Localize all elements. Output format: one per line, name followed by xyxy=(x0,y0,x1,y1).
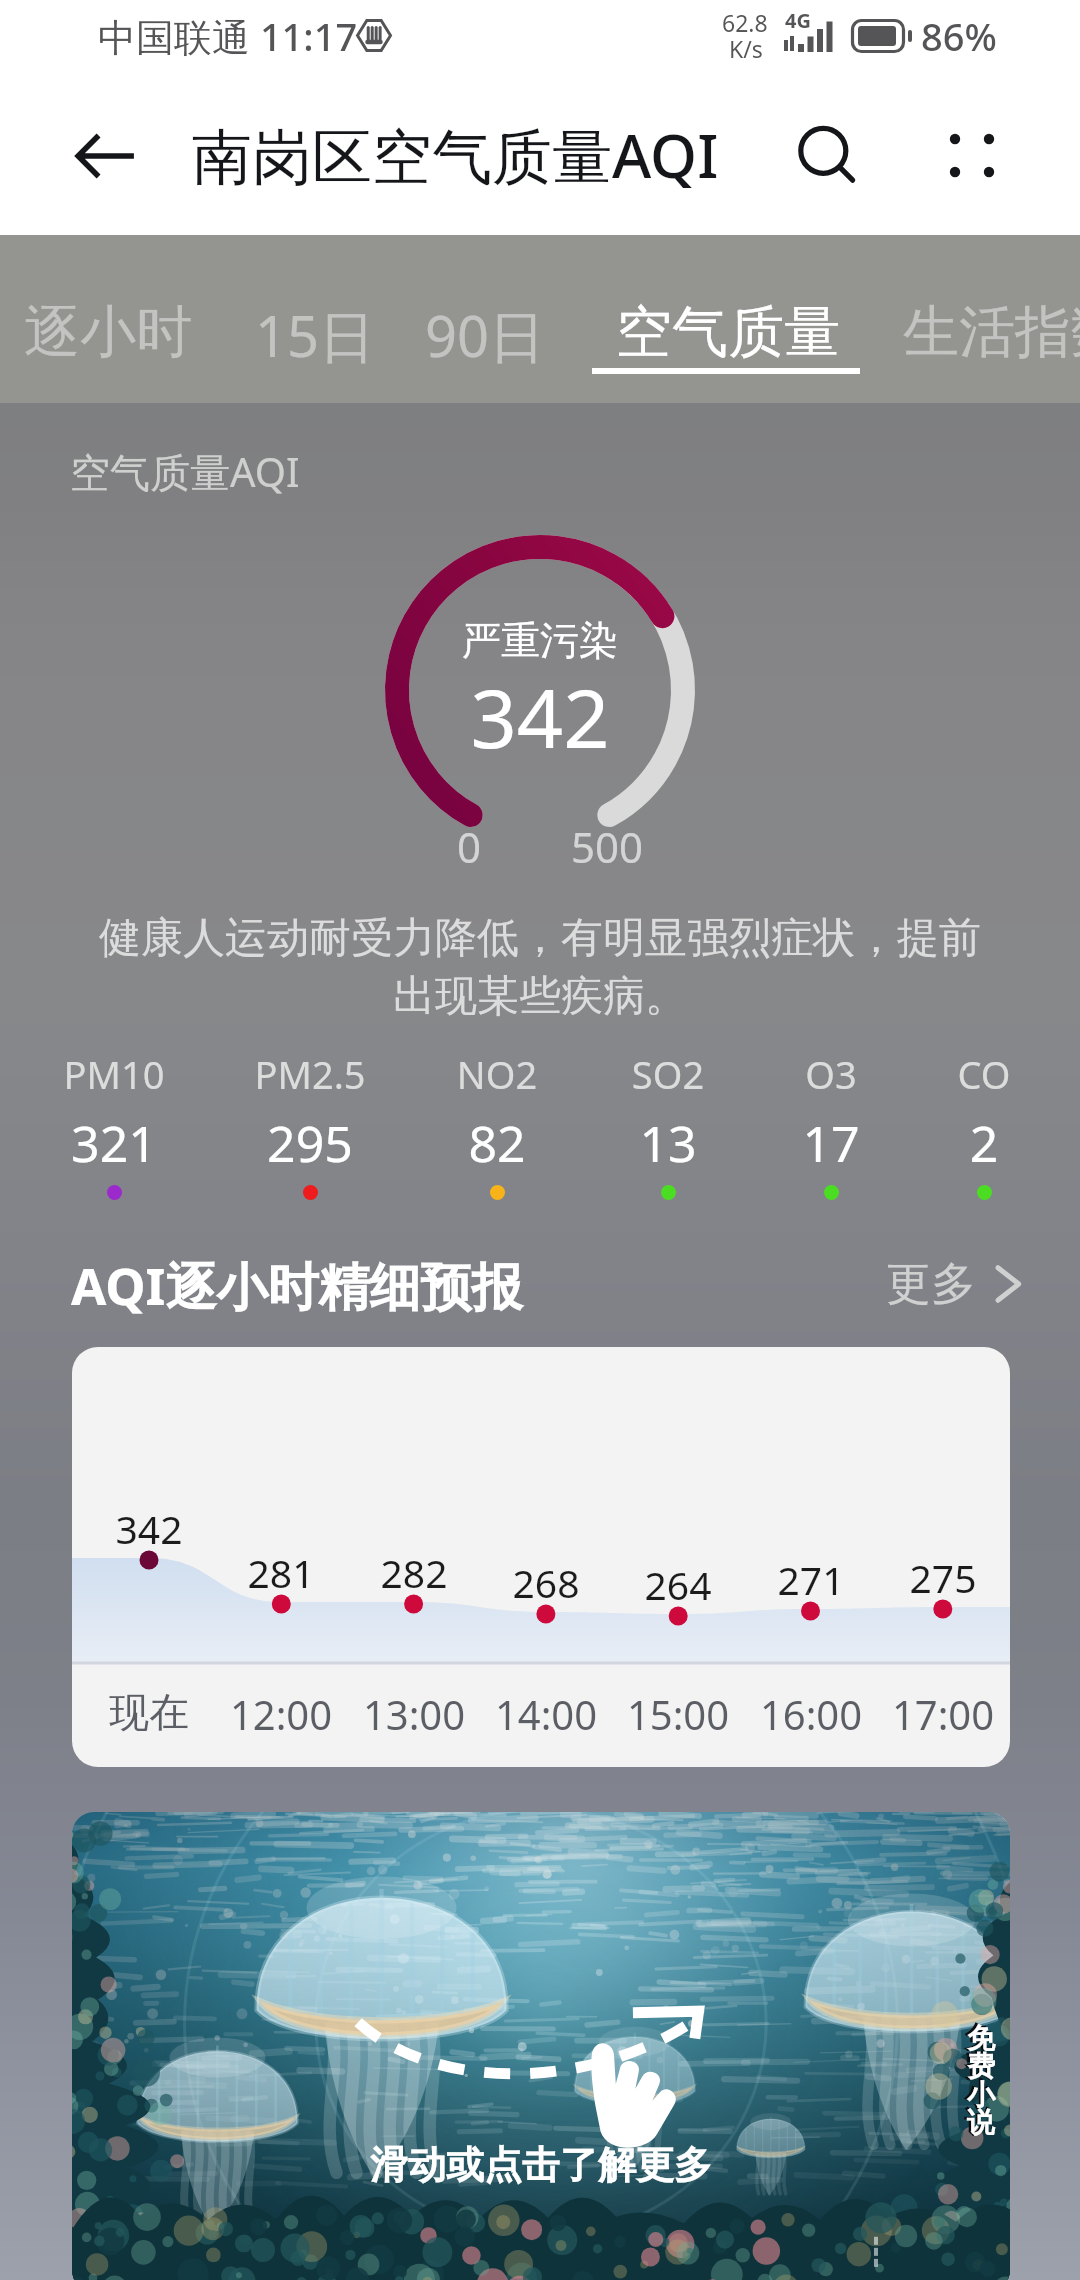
staticText: NO2 xyxy=(412,1048,582,1100)
staticText: 16:00 xyxy=(741,1687,881,1741)
staticText: 342 xyxy=(0,661,1080,771)
staticText: 17 xyxy=(746,1109,916,1177)
staticText: 12:00 xyxy=(211,1687,351,1741)
staticText: 13 xyxy=(583,1109,753,1177)
staticText: 空气质量 xyxy=(616,297,840,368)
staticText: 62.8 xyxy=(722,7,768,38)
staticText: 14:00 xyxy=(476,1687,616,1741)
staticText: PM10 xyxy=(29,1048,199,1100)
staticText: 生活指数 xyxy=(903,297,1080,368)
staticText: 90日 xyxy=(425,297,546,373)
staticText: 295 xyxy=(225,1109,395,1177)
button[interactable]: 逐小时 xyxy=(2,235,170,403)
staticText: AQI逐小时精细预报 xyxy=(71,1250,523,1320)
staticText: 4G xyxy=(785,7,811,34)
button[interactable]: Advertisement xyxy=(72,1812,1010,2280)
staticText: 0 xyxy=(457,818,482,875)
staticText: 南岗区空气质量AQI xyxy=(192,114,719,196)
staticText: 更多 xyxy=(886,1256,976,1313)
staticText: 82 xyxy=(412,1109,582,1177)
staticText: CO xyxy=(899,1048,1069,1100)
staticText: 15日 xyxy=(255,297,376,373)
staticText: 15:00 xyxy=(608,1687,748,1741)
button[interactable]: CO xyxy=(899,1048,1069,1223)
button[interactable]: PM10 xyxy=(29,1048,199,1223)
staticText: 321 xyxy=(29,1109,199,1177)
button[interactable]: 空气质量 xyxy=(594,235,818,403)
staticText: 2 xyxy=(899,1109,1069,1177)
staticText: 264 xyxy=(608,1558,748,1611)
staticText: 271 xyxy=(741,1553,881,1606)
staticText: 268 xyxy=(476,1556,616,1609)
button[interactable]: Back xyxy=(48,98,164,214)
button[interactable]: NO2 xyxy=(412,1048,582,1223)
staticText: SO2 xyxy=(583,1048,753,1100)
staticText: 滑动或点击了解更多 xyxy=(72,2141,1010,2189)
staticText: PM2.5 xyxy=(225,1048,395,1100)
button[interactable]: 15日 xyxy=(233,235,354,403)
staticText: 275 xyxy=(873,1551,1010,1604)
button[interactable]: PM2.5 xyxy=(225,1048,395,1223)
staticText: 86% xyxy=(921,10,997,62)
staticText: 免 费 小 说 xyxy=(963,2019,995,2141)
button[interactable]: 90日 xyxy=(403,235,524,403)
staticText: 逐小时 xyxy=(24,297,192,368)
staticText: 281 xyxy=(211,1546,351,1599)
button[interactable]: More options xyxy=(897,93,1013,209)
staticText: 空气质量AQI xyxy=(70,444,300,499)
staticText: 282 xyxy=(344,1546,484,1599)
button[interactable]: SO2 xyxy=(583,1048,753,1223)
staticText: 500 xyxy=(571,818,644,875)
button[interactable]: Search xyxy=(765,93,881,209)
staticText: 健康人运动耐受力降低，有明显强烈症状，提前 出现某些疾病。 xyxy=(0,912,1080,1023)
staticText: K/s xyxy=(729,33,763,64)
button[interactable]: O3 xyxy=(746,1048,916,1223)
staticText: 中国联通 11:17 xyxy=(98,10,358,62)
staticText: 严重污染 xyxy=(0,616,1080,665)
button[interactable]: 342 xyxy=(72,1347,1010,1767)
staticText: O3 xyxy=(746,1048,916,1100)
button[interactable]: 生活指数 xyxy=(881,235,1080,403)
staticText: 现在 xyxy=(79,1687,219,1737)
button[interactable]: 更多 xyxy=(886,1244,1026,1324)
staticText: 17:00 xyxy=(873,1687,1010,1741)
staticText: 免 费 小 说 xyxy=(965,2021,997,2140)
staticText: 342 xyxy=(79,1502,219,1555)
staticText: 13:00 xyxy=(344,1687,484,1741)
